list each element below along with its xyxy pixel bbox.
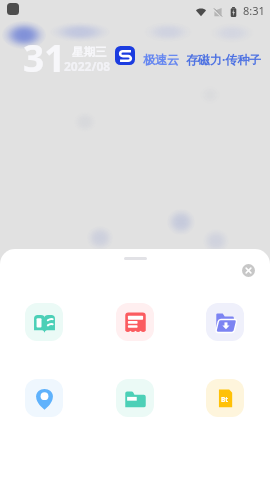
staticText: 存磁力·传种子 <box>186 51 262 67</box>
button[interactable]: Folders <box>116 379 154 417</box>
staticText: Bt <box>221 395 229 404</box>
button[interactable]: BT files <box>206 379 244 417</box>
button[interactable]: Downloads <box>206 303 244 341</box>
button[interactable]: Location <box>25 379 63 417</box>
button[interactable]: Close <box>242 264 255 277</box>
staticText: 2022/08 <box>64 58 111 74</box>
staticText: 8:31 <box>243 3 265 18</box>
staticText: 31 <box>23 32 66 82</box>
staticText: 极速云 <box>143 52 179 67</box>
button[interactable]: Books <box>25 303 63 341</box>
button[interactable]: Documents <box>116 303 154 341</box>
staticText: 星期三 <box>72 45 107 59</box>
